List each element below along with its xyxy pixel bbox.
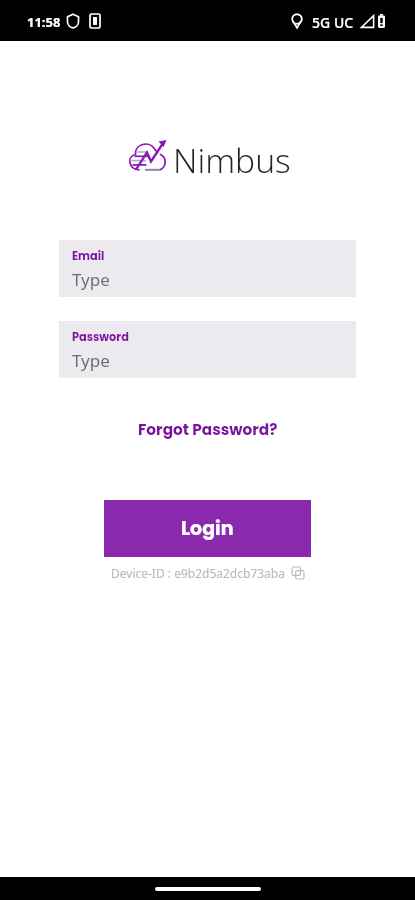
staticText: UC bbox=[334, 13, 354, 32]
button[interactable]: Email bbox=[59, 240, 356, 297]
button[interactable]: Forgot Password? bbox=[128, 414, 288, 445]
staticText: Device-ID : e9b2d5a2dcb73aba bbox=[111, 565, 285, 581]
button[interactable]: Password bbox=[59, 321, 356, 378]
staticText: Type bbox=[72, 268, 110, 291]
staticText: 11:58 bbox=[27, 13, 61, 31]
staticText: Email bbox=[72, 248, 105, 264]
button[interactable]: Copy device ID bbox=[292, 567, 304, 579]
staticText: Login bbox=[181, 515, 234, 542]
staticText: Type bbox=[72, 349, 110, 372]
button[interactable]: Login bbox=[104, 500, 311, 557]
staticText: Password bbox=[72, 329, 129, 345]
staticText: 5G bbox=[312, 13, 331, 32]
staticText: Nimbus bbox=[173, 137, 291, 173]
